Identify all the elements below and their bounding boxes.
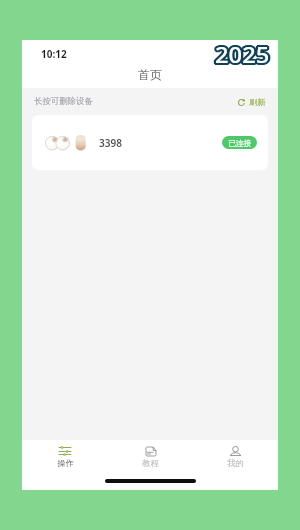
staticText: 2025 [216,41,271,67]
staticText: 2025 [214,40,269,66]
staticText: 2025 [215,41,270,67]
button[interactable]: 我的 [193,440,278,490]
staticText: 刷新 [249,97,266,107]
button[interactable]: 3398 [32,115,268,170]
staticText: 2025 [214,42,269,68]
staticText: 2025 [213,42,268,68]
staticText: 操作 [57,458,74,468]
staticText: 2025 [216,42,271,68]
other: 我的 [230,446,241,456]
staticText: 2025 [215,40,270,66]
staticText: 2025 [215,42,270,68]
staticText: 2025 [214,43,269,69]
staticText: 2025 [215,40,270,66]
staticText: 我的 [227,458,244,468]
staticText: 2025 [215,42,270,68]
staticText: 2025 [217,41,273,67]
staticText: 2025 [215,42,270,68]
staticText: 2025 [215,39,270,65]
button[interactable]: 操作 [22,440,108,490]
staticText: 2025 [214,41,269,67]
staticText: 2025 [216,40,271,66]
staticText: 已连接 [228,138,252,148]
staticText: 2025 [216,42,271,68]
staticText: 2025 [214,40,269,66]
staticText: 2025 [216,41,271,67]
staticText: 3398 [99,136,122,150]
staticText: 2025 [217,42,273,68]
staticText: 教程 [142,458,159,468]
staticText: 10:12 [41,47,67,61]
button[interactable]: 已连接 [222,136,257,149]
staticText: 长按可删除设备 [34,96,93,107]
staticText: 2025 [213,40,268,66]
button[interactable]: 教程 [108,440,193,490]
staticText: 2025 [214,41,269,67]
staticText: 2025 [216,40,271,66]
staticText: 2025 [216,39,271,65]
staticText: 2025 [214,39,269,65]
other: 操作 [59,447,71,455]
staticText: 2025 [213,41,268,67]
staticText: 2025 [214,42,269,68]
staticText: 2025 [214,41,269,67]
other: 教程 [146,447,156,456]
staticText: 2025 [215,40,270,66]
staticText: 2025 [215,43,270,69]
button[interactable]: 刷新 [236,94,268,110]
staticText: 2025 [217,40,273,66]
staticText: 2025 [216,41,271,67]
staticText: 首页 [138,67,162,82]
staticText: 2025 [216,43,271,69]
